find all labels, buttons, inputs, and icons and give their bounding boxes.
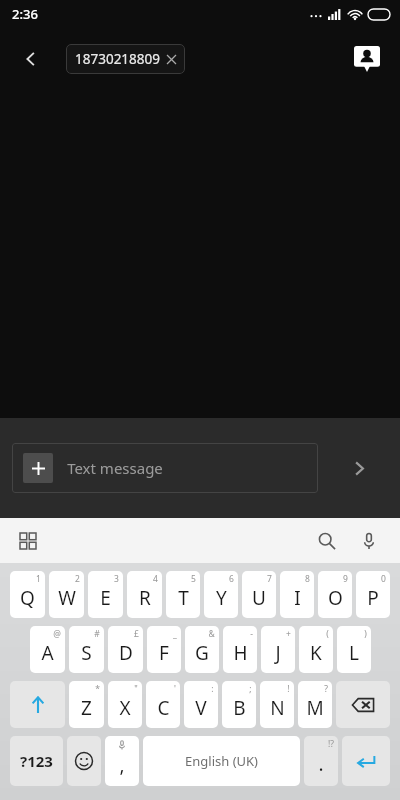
staticText: J <box>275 640 281 666</box>
button[interactable]: 9 <box>318 571 352 618</box>
button[interactable]: Back <box>14 42 48 76</box>
staticText: ) <box>364 628 367 640</box>
staticText: ( <box>326 628 329 640</box>
button[interactable]: 2 <box>49 571 84 618</box>
button[interactable]: ' <box>146 681 180 728</box>
button[interactable]: ! <box>260 681 294 728</box>
staticText: ; <box>249 683 252 695</box>
button[interactable]: Keyboard menu <box>13 526 43 556</box>
staticText: - <box>250 628 253 640</box>
staticText: Text message <box>67 458 163 478</box>
button[interactable]: £ <box>108 626 143 673</box>
staticText: B <box>233 695 246 721</box>
button[interactable]: Shift <box>10 681 65 728</box>
staticText: ! <box>287 683 290 695</box>
button[interactable]: : <box>184 681 218 728</box>
staticText: # <box>94 628 100 640</box>
staticText: 8 <box>305 573 310 585</box>
button[interactable]: ) <box>337 626 371 673</box>
button[interactable]: Backspace <box>336 681 390 728</box>
button[interactable]: @ <box>30 626 65 673</box>
staticText: P <box>367 585 379 611</box>
staticText: _ <box>173 628 177 640</box>
button[interactable]: ; <box>222 681 256 728</box>
staticText: 2 <box>75 573 80 585</box>
staticText: 7 <box>267 573 272 585</box>
staticText: . <box>318 751 324 777</box>
button[interactable]: 3 <box>88 571 123 618</box>
button[interactable]: - <box>223 626 257 673</box>
staticText: R <box>139 585 151 611</box>
staticText: Z <box>81 695 92 721</box>
button[interactable]: + <box>261 626 295 673</box>
button[interactable]: Enter <box>342 736 390 786</box>
button[interactable]: 8 <box>280 571 314 618</box>
staticText: , <box>119 752 125 778</box>
button[interactable]: 5 <box>166 571 200 618</box>
button[interactable]: Emoji <box>67 736 101 786</box>
staticText: X <box>119 695 131 721</box>
staticText: H <box>233 640 248 666</box>
staticText: I <box>294 585 301 611</box>
staticText: D <box>119 640 133 666</box>
button[interactable]: Contacts <box>348 40 386 78</box>
button[interactable]: !? <box>304 736 338 786</box>
staticText: ? <box>324 683 328 695</box>
staticText: + <box>286 628 291 640</box>
staticText: 3 <box>114 573 119 585</box>
button[interactable]: English (UK) <box>143 736 300 786</box>
staticText: K <box>310 640 322 666</box>
staticText: £ <box>134 628 139 640</box>
staticText: G <box>195 640 209 666</box>
button[interactable]: Send <box>318 418 400 518</box>
staticText: M <box>306 695 324 721</box>
staticText: @ <box>53 628 61 640</box>
staticText: A <box>41 640 54 666</box>
button[interactable]: " <box>108 681 142 728</box>
staticText: : <box>211 683 214 695</box>
button[interactable]: 7 <box>242 571 276 618</box>
staticText: N <box>270 695 285 721</box>
button[interactable]: & <box>185 626 219 673</box>
staticText: ' <box>174 683 176 695</box>
button[interactable]: 18730218809 <box>66 44 185 74</box>
staticText: 9 <box>343 573 348 585</box>
button[interactable]: Symbols <box>10 736 63 786</box>
staticText: L <box>349 640 359 666</box>
staticText: 5 <box>191 573 196 585</box>
staticText: ?123 <box>20 751 53 771</box>
button[interactable]: _ <box>147 626 181 673</box>
button[interactable]: # <box>69 626 104 673</box>
button[interactable]: 4 <box>127 571 162 618</box>
staticText: W <box>58 585 76 611</box>
staticText: Q <box>20 585 35 611</box>
button[interactable]: Voice input <box>352 524 386 558</box>
staticText: !? <box>328 738 334 750</box>
staticText: T <box>178 585 189 611</box>
staticText: 1 <box>36 573 41 585</box>
button[interactable]: Comma <box>105 736 139 786</box>
staticText: 4 <box>153 573 158 585</box>
staticText: 6 <box>229 573 234 585</box>
button[interactable]: ( <box>299 626 333 673</box>
button[interactable]: ? <box>298 681 332 728</box>
button[interactable]: 6 <box>204 571 238 618</box>
button[interactable]: 1 <box>10 571 45 618</box>
staticText: S <box>81 640 92 666</box>
button[interactable]: Add attachment <box>23 453 53 483</box>
staticText: 18730218809 <box>75 50 160 68</box>
staticText: O <box>328 585 343 611</box>
staticText: * <box>95 683 100 695</box>
staticText: U <box>252 585 266 611</box>
staticText: " <box>134 683 138 695</box>
staticText: 2:36 <box>12 5 38 23</box>
staticText: V <box>195 695 207 721</box>
button[interactable]: 0 <box>356 571 390 618</box>
staticText: E <box>100 585 111 611</box>
button[interactable]: Search <box>310 524 344 558</box>
staticText: 0 <box>381 573 386 585</box>
staticText: & <box>208 628 215 640</box>
staticText: C <box>157 695 170 721</box>
button[interactable]: * <box>69 681 104 728</box>
button[interactable]: Add attachment <box>12 443 318 493</box>
